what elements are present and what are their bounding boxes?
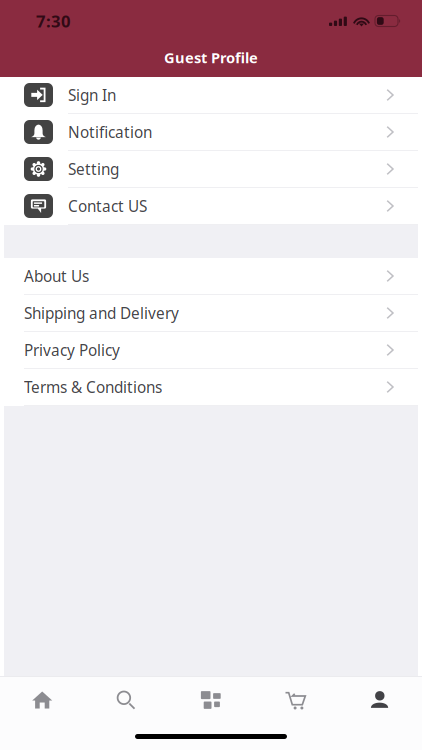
staticText: Notification [68,122,152,142]
staticText: Terms & Conditions [24,377,162,397]
staticText: Sign In [68,85,116,105]
staticText: Setting [68,159,119,179]
button[interactable]: Contact US [0,188,422,225]
button[interactable]: Search [84,689,169,710]
button[interactable]: Profile [338,689,422,710]
button[interactable]: Categories [169,689,253,710]
button[interactable]: Notification [0,114,422,151]
button[interactable]: Privacy Policy [0,332,422,369]
button[interactable]: Setting [0,151,422,188]
staticText: Contact US [68,196,147,216]
staticText: Guest Profile [164,47,258,67]
staticText: About Us [24,266,89,286]
staticText: Privacy Policy [24,340,120,360]
button[interactable]: Shipping and Delivery [0,295,422,332]
staticText: 7:30 [36,10,71,32]
button[interactable]: Sign In [0,77,422,114]
staticText: Shipping and Delivery [24,303,179,323]
button[interactable]: About Us [0,258,422,295]
button[interactable]: Terms & Conditions [0,369,422,406]
button[interactable]: Cart [253,689,338,710]
button[interactable]: Home [0,689,84,710]
